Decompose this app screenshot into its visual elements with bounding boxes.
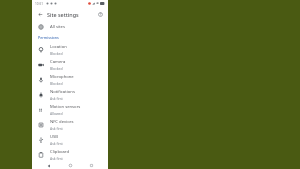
staticText: Microphone (50, 74, 74, 80)
staticText: Camera (50, 59, 66, 65)
staticText: Ask first (50, 156, 63, 161)
staticText: Blocked (50, 51, 63, 56)
button[interactable]: Navigate up (36, 10, 44, 18)
button[interactable]: All sites (32, 21, 108, 33)
button[interactable]: Help and feedback (96, 10, 104, 18)
staticText: Blocked (50, 81, 63, 86)
staticText: NFC devices (50, 119, 74, 125)
staticText: Clipboard (50, 149, 70, 155)
staticText: Location (50, 44, 67, 50)
button[interactable]: Recent apps (87, 162, 95, 169)
button[interactable]: Back (45, 162, 53, 169)
staticText: Ask first (50, 141, 63, 146)
button[interactable]: Notifications (32, 87, 108, 102)
staticText: USB (50, 134, 59, 140)
button[interactable]: USB (32, 132, 108, 147)
staticText: Permissions (38, 35, 59, 40)
staticText: Allowed (50, 111, 63, 116)
staticText: Ask first (50, 126, 63, 131)
staticText: 10:51 (35, 2, 44, 6)
button[interactable]: Clipboard (32, 147, 108, 162)
button[interactable]: Motion sensors (32, 102, 108, 117)
staticText: Ask first (50, 96, 63, 101)
button[interactable]: Home (66, 162, 74, 169)
staticText: Notifications (50, 89, 75, 95)
staticText: Motion sensors (50, 104, 81, 110)
button[interactable]: NFC devices (32, 117, 108, 132)
button[interactable]: Camera (32, 57, 108, 72)
button[interactable]: Microphone (32, 72, 108, 87)
button[interactable]: Location (32, 42, 108, 57)
staticText: Site settings (47, 11, 79, 18)
staticText: Blocked (50, 66, 63, 71)
staticText: All sites (50, 24, 65, 30)
